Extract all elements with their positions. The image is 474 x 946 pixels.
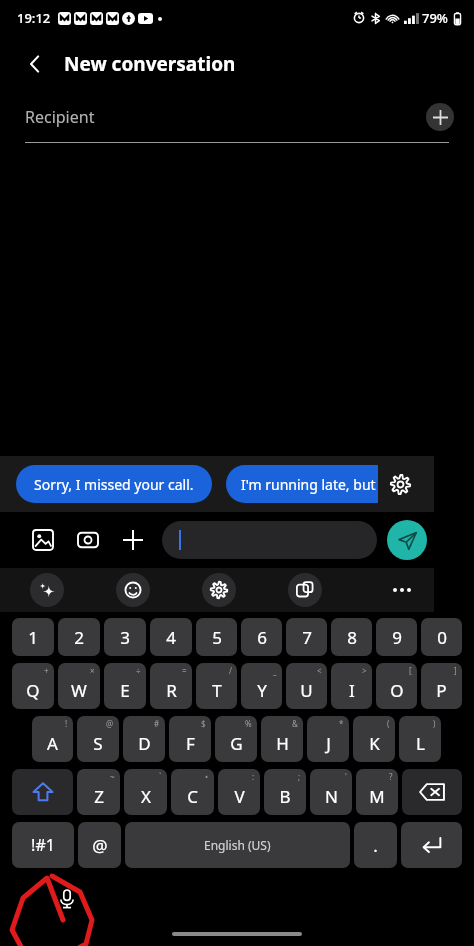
staticText: ' <box>345 771 347 782</box>
staticText: A <box>47 732 58 755</box>
button[interactable]: Shift <box>12 769 73 815</box>
staticText: F <box>186 732 195 755</box>
staticText: ] <box>454 665 457 676</box>
staticText: W <box>71 679 87 702</box>
staticText: 8 <box>347 626 357 649</box>
button[interactable]: ; <box>264 769 306 815</box>
staticText: • <box>205 771 209 782</box>
button[interactable]: 1 <box>12 618 54 656</box>
button[interactable]: ] <box>421 663 462 709</box>
button[interactable]: Suggestion settings <box>378 462 422 506</box>
button[interactable]: 5 <box>196 618 237 656</box>
button[interactable]: & <box>261 716 303 762</box>
button[interactable]: _ <box>241 663 282 709</box>
button[interactable]: < <box>286 663 327 709</box>
button[interactable]: Emoji <box>116 573 150 607</box>
button[interactable]: 7 <box>286 618 327 656</box>
staticText: . <box>373 834 378 857</box>
button[interactable]: × <box>58 663 100 709</box>
button[interactable]: Enter <box>401 822 462 868</box>
button[interactable]: # <box>123 716 165 762</box>
button[interactable]: Send <box>387 520 427 560</box>
button[interactable]: !#1 <box>12 822 74 868</box>
staticText: ` <box>159 771 162 782</box>
button[interactable]: I'm running late, but <box>226 465 378 503</box>
button[interactable]: Add recipient <box>426 103 454 131</box>
staticText: 5 <box>212 626 222 649</box>
button[interactable]: / <box>196 663 237 709</box>
button[interactable] <box>162 521 377 559</box>
button[interactable]: ) <box>399 716 441 762</box>
button[interactable]: Backspace <box>402 769 462 815</box>
staticText: * <box>339 718 344 729</box>
button[interactable]: ' <box>310 769 352 815</box>
staticText: V <box>234 785 245 808</box>
staticText: $ <box>201 718 206 729</box>
button[interactable]: AI suggestions <box>30 573 64 607</box>
staticText: English (US) <box>204 837 271 853</box>
button[interactable]: More <box>382 570 422 610</box>
staticText: L <box>416 732 425 755</box>
staticText: Z <box>94 785 104 808</box>
button[interactable]: . <box>354 822 397 868</box>
button[interactable]: Sorry, I missed your call. <box>16 465 212 503</box>
button[interactable]: [ <box>376 663 417 709</box>
staticText: > <box>362 665 367 676</box>
staticText: _ <box>273 665 277 676</box>
staticText: 2 <box>74 626 84 649</box>
staticText: G <box>230 732 243 755</box>
staticText: 19:12 <box>17 9 51 27</box>
staticText: ? <box>389 771 393 782</box>
staticText: I <box>349 679 355 702</box>
button[interactable]: 4 <box>150 618 192 656</box>
button[interactable]: Keyboard settings <box>202 573 236 607</box>
button[interactable]: Gallery <box>24 521 62 559</box>
button[interactable]: @ <box>77 716 119 762</box>
button[interactable]: More options <box>114 521 152 559</box>
button[interactable]: 8 <box>331 618 372 656</box>
staticText: I'm running late, but <box>241 475 376 494</box>
button[interactable]: Voice input <box>50 882 84 916</box>
staticText: % <box>245 718 252 729</box>
button[interactable]: 3 <box>104 618 146 656</box>
button[interactable]: English (US) <box>125 822 350 868</box>
staticText: B <box>279 785 291 808</box>
button[interactable]: ÷ <box>104 663 146 709</box>
button[interactable]: ! <box>32 716 73 762</box>
staticText: 9 <box>392 626 402 649</box>
button[interactable]: ` <box>124 769 167 815</box>
button[interactable]: ( <box>353 716 395 762</box>
button[interactable]: 0 <box>421 618 462 656</box>
button[interactable]: $ <box>169 716 211 762</box>
button[interactable]: : <box>218 769 260 815</box>
button[interactable]: * <box>307 716 349 762</box>
button[interactable]: • <box>171 769 214 815</box>
button[interactable]: 2 <box>58 618 100 656</box>
button[interactable]: ~ <box>77 769 120 815</box>
staticText: N <box>325 785 338 808</box>
button[interactable]: @ <box>78 822 121 868</box>
staticText: 1 <box>28 626 38 649</box>
staticText: @ <box>106 718 114 729</box>
staticText: O <box>390 679 404 702</box>
button[interactable]: Camera <box>69 521 107 559</box>
button[interactable]: = <box>150 663 192 709</box>
button[interactable]: 9 <box>376 618 417 656</box>
button[interactable]: % <box>215 716 257 762</box>
button[interactable]: > <box>331 663 372 709</box>
button[interactable]: Back <box>14 43 56 85</box>
staticText: E <box>120 679 130 702</box>
staticText: New conversation <box>64 51 236 77</box>
staticText: X <box>141 785 151 808</box>
staticText: [ <box>409 665 412 676</box>
staticText: U <box>300 679 313 702</box>
button[interactable]: 6 <box>241 618 282 656</box>
button[interactable]: ? <box>356 769 398 815</box>
button[interactable]: Translate <box>288 573 322 607</box>
staticText: ) <box>433 718 436 729</box>
staticText: P <box>436 679 447 702</box>
staticText: 3 <box>120 626 130 649</box>
button[interactable]: + <box>12 663 54 709</box>
staticText: K <box>369 732 380 755</box>
staticText: ! <box>65 718 68 729</box>
